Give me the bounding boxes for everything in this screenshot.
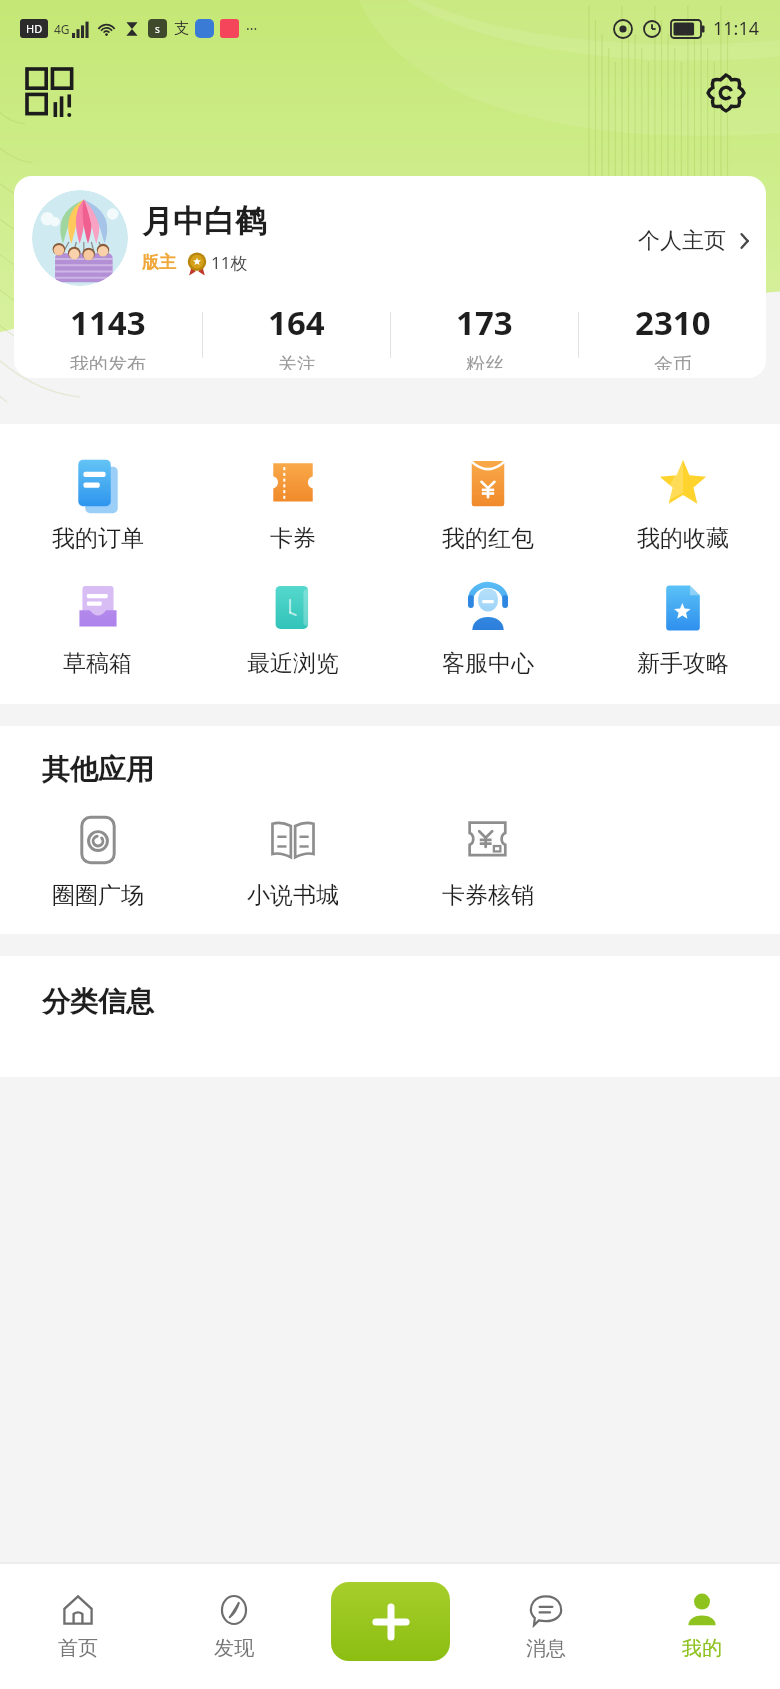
button[interactable]: Settings <box>698 65 754 121</box>
staticText: 金币 <box>654 353 692 370</box>
button[interactable]: 1143 <box>14 300 202 370</box>
button[interactable]: 客服中心 <box>390 579 585 678</box>
button[interactable]: Menu <box>22 64 80 122</box>
staticText: 卡券核销 <box>442 881 534 910</box>
button[interactable]: 小说书城 <box>195 813 390 910</box>
button[interactable]: 圈圈广场 <box>0 813 195 910</box>
button[interactable]: Post <box>331 1582 450 1661</box>
button[interactable]: 我的红包 <box>390 454 585 553</box>
staticText: 发现 <box>214 1636 254 1661</box>
staticText: 消息 <box>526 1636 566 1661</box>
staticText: 小说书城 <box>247 881 339 910</box>
staticText: 我的订单 <box>52 524 144 553</box>
staticText: s <box>155 22 160 36</box>
staticText: 11枚 <box>211 251 248 274</box>
button[interactable]: 最近浏览 <box>195 579 390 678</box>
staticText: 我的收藏 <box>637 524 729 553</box>
staticText: 关注 <box>278 353 316 370</box>
button[interactable]: 消息 <box>468 1562 624 1689</box>
staticText: 2310 <box>635 300 711 345</box>
staticText: 客服中心 <box>442 649 534 678</box>
button[interactable]: 2310 <box>579 300 766 370</box>
button[interactable]: 卡券 <box>195 454 390 553</box>
button[interactable]: 我的 <box>624 1562 780 1689</box>
staticText: ··· <box>246 19 258 38</box>
staticText: 草稿箱 <box>63 649 132 678</box>
staticText: 个人主页 <box>638 227 726 255</box>
button[interactable]: 新手攻略 <box>585 579 780 678</box>
button[interactable]: 我的订单 <box>0 454 195 553</box>
button[interactable]: 发现 <box>156 1562 312 1689</box>
staticText: 圈圈广场 <box>52 881 144 910</box>
staticText: 粉丝 <box>466 353 504 370</box>
staticText: 11:14 <box>713 16 760 41</box>
staticText: 我的 <box>682 1636 722 1661</box>
button[interactable]: 164 <box>203 300 390 370</box>
staticText: HD <box>26 21 43 36</box>
button[interactable]: 我的收藏 <box>585 454 780 553</box>
staticText: 1143 <box>70 300 146 345</box>
staticText: 我的红包 <box>442 524 534 553</box>
staticText: 其他应用 <box>42 752 154 787</box>
staticText: 164 <box>268 300 325 345</box>
staticText: 173 <box>456 300 513 345</box>
staticText: 支 <box>174 19 189 38</box>
button[interactable]: 个人主页 <box>638 227 754 255</box>
staticText: 我的发布 <box>70 353 146 370</box>
button[interactable]: 首页 <box>0 1562 156 1689</box>
button[interactable]: 草稿箱 <box>0 579 195 678</box>
button[interactable]: 173 <box>391 300 578 370</box>
staticText: 月中白鹤 <box>142 202 266 241</box>
staticText: 新手攻略 <box>637 649 729 678</box>
staticText: 版主 <box>142 252 176 273</box>
button[interactable]: 卡券核销 <box>390 813 585 910</box>
button[interactable]: Avatar <box>32 190 128 286</box>
staticText: 4G <box>54 21 70 37</box>
staticText: 分类信息 <box>42 984 154 1019</box>
staticText: 首页 <box>58 1636 98 1661</box>
staticText: 卡券 <box>270 524 316 553</box>
staticText: 最近浏览 <box>247 649 339 678</box>
